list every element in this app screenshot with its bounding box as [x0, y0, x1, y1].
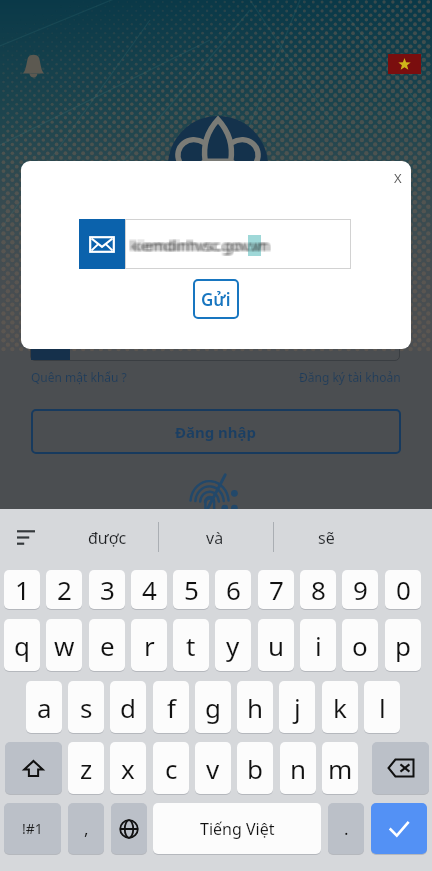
staticText: h	[247, 690, 264, 725]
button[interactable]: h	[237, 681, 273, 733]
staticText: và	[206, 527, 224, 549]
button[interactable]: !#1	[4, 803, 61, 854]
button[interactable]: b	[237, 742, 273, 794]
button[interactable]: o	[342, 619, 378, 671]
button[interactable]: e	[89, 619, 125, 671]
staticText: c	[165, 751, 178, 786]
button[interactable]: Close	[385, 165, 411, 191]
button[interactable]: Language	[388, 54, 421, 74]
button[interactable]: 2	[46, 570, 82, 609]
staticText: x	[121, 751, 135, 786]
button[interactable]: u	[258, 619, 294, 671]
staticText: t	[186, 628, 196, 663]
button[interactable]: Enter	[371, 803, 427, 854]
button[interactable]: Đăng ký tài khoản	[299, 369, 401, 385]
button[interactable]: d	[110, 681, 146, 733]
staticText: kiemdinhvsc.gov.vn	[133, 234, 271, 254]
staticText: z	[80, 751, 93, 786]
staticText: 0	[396, 572, 411, 607]
button[interactable]: Backspace	[372, 742, 429, 794]
button[interactable]: r	[131, 619, 167, 671]
button[interactable]: 5	[173, 570, 209, 609]
staticText: Đăng nhập	[175, 422, 257, 442]
staticText: w	[54, 628, 75, 663]
button[interactable]: p	[385, 619, 421, 671]
button[interactable]: m	[322, 742, 358, 794]
staticText: 6	[226, 572, 241, 607]
button[interactable]: 4	[131, 570, 167, 609]
staticText: g	[205, 690, 221, 725]
staticText: kiemdinhvsc.gov.vn	[132, 234, 270, 254]
button[interactable]: i	[300, 619, 336, 671]
button[interactable]: 8	[300, 570, 336, 609]
button[interactable]: n	[280, 742, 316, 794]
button[interactable]: w	[46, 619, 82, 671]
staticText: Gửi	[201, 288, 231, 311]
staticText: kiemdinhvsc.gov.vn	[129, 236, 267, 256]
button[interactable]: v	[195, 742, 231, 794]
staticText: kiemdinhvsc.gov.vn	[133, 235, 271, 255]
staticText: s	[80, 690, 93, 725]
staticText: Quên mật khẩu ?	[31, 369, 127, 385]
staticText: r	[144, 628, 155, 663]
staticText: Tiếng Việt	[200, 818, 275, 840]
button[interactable]: ,	[68, 803, 104, 854]
button[interactable]: 9	[342, 570, 378, 609]
button[interactable]: Đăng nhập	[31, 409, 401, 454]
staticText: kiemdinhvsc.gov.vn	[131, 236, 269, 256]
button[interactable]: l	[364, 681, 400, 733]
button[interactable]: Suggestions menu	[5, 517, 46, 558]
button[interactable]: 7	[258, 570, 294, 609]
staticText: y	[226, 628, 240, 663]
button[interactable]: Shift	[5, 742, 62, 794]
button[interactable]: a	[26, 681, 62, 733]
button[interactable]: y	[215, 619, 251, 671]
staticText: 1	[15, 572, 30, 607]
button[interactable]: 3	[89, 570, 125, 609]
staticText: kiemdinhvsc.gov.vn	[128, 234, 266, 254]
staticText: 2	[57, 572, 72, 607]
button[interactable]: 0	[385, 570, 421, 609]
button[interactable]: Fingerprint login disabled	[193, 474, 239, 520]
button[interactable]: Change language	[111, 803, 147, 854]
staticText: m	[328, 751, 353, 786]
button[interactable]: 1	[4, 570, 40, 609]
button[interactable]: .	[328, 803, 364, 854]
button[interactable]: z	[68, 742, 104, 794]
staticText: 4	[142, 572, 157, 607]
button[interactable]: t	[173, 619, 209, 671]
staticText: kiemdinhvsc.gov.vn	[130, 236, 268, 256]
staticText: kiemdinhvsc.gov.vn	[131, 235, 269, 255]
button[interactable]: c	[153, 742, 189, 794]
staticText: p	[395, 628, 411, 663]
staticText: kiemdinhvsc.gov.vn	[128, 236, 266, 256]
button[interactable]: sẽ	[276, 517, 376, 558]
button[interactable]: Tiếng Việt	[153, 803, 321, 854]
button[interactable]: s	[68, 681, 104, 733]
staticText: a	[37, 690, 52, 725]
button[interactable]: được	[57, 517, 157, 558]
staticText: kiemdinhvsc.gov.vn	[133, 236, 271, 256]
button[interactable]: f	[153, 681, 189, 733]
button[interactable]: j	[279, 681, 315, 733]
button[interactable]: Gửi	[193, 279, 239, 319]
button[interactable]: 6	[215, 570, 251, 609]
staticText: e	[100, 628, 115, 663]
staticText: q	[14, 628, 30, 663]
button[interactable]: x	[110, 742, 146, 794]
staticText: d	[120, 690, 136, 725]
button[interactable]: g	[195, 681, 231, 733]
staticText: kiemdinhvsc.gov.vn	[134, 235, 272, 255]
staticText: kiemdinhvsc.gov.vn	[129, 235, 267, 255]
button[interactable]: Quên mật khẩu ?	[31, 369, 127, 385]
staticText: kiemdinhvsc.gov.vn	[130, 234, 268, 254]
staticText: kiemdinhvsc.gov.vn	[132, 235, 270, 255]
staticText: X	[394, 169, 402, 187]
staticText: được	[88, 527, 127, 549]
staticText: kiemdinhvsc.gov.vn	[131, 234, 269, 254]
staticText: v	[206, 751, 220, 786]
button[interactable]: k	[322, 681, 358, 733]
button[interactable]: q	[4, 619, 40, 671]
staticText: !#1	[22, 819, 43, 838]
button[interactable]: và	[165, 517, 265, 558]
